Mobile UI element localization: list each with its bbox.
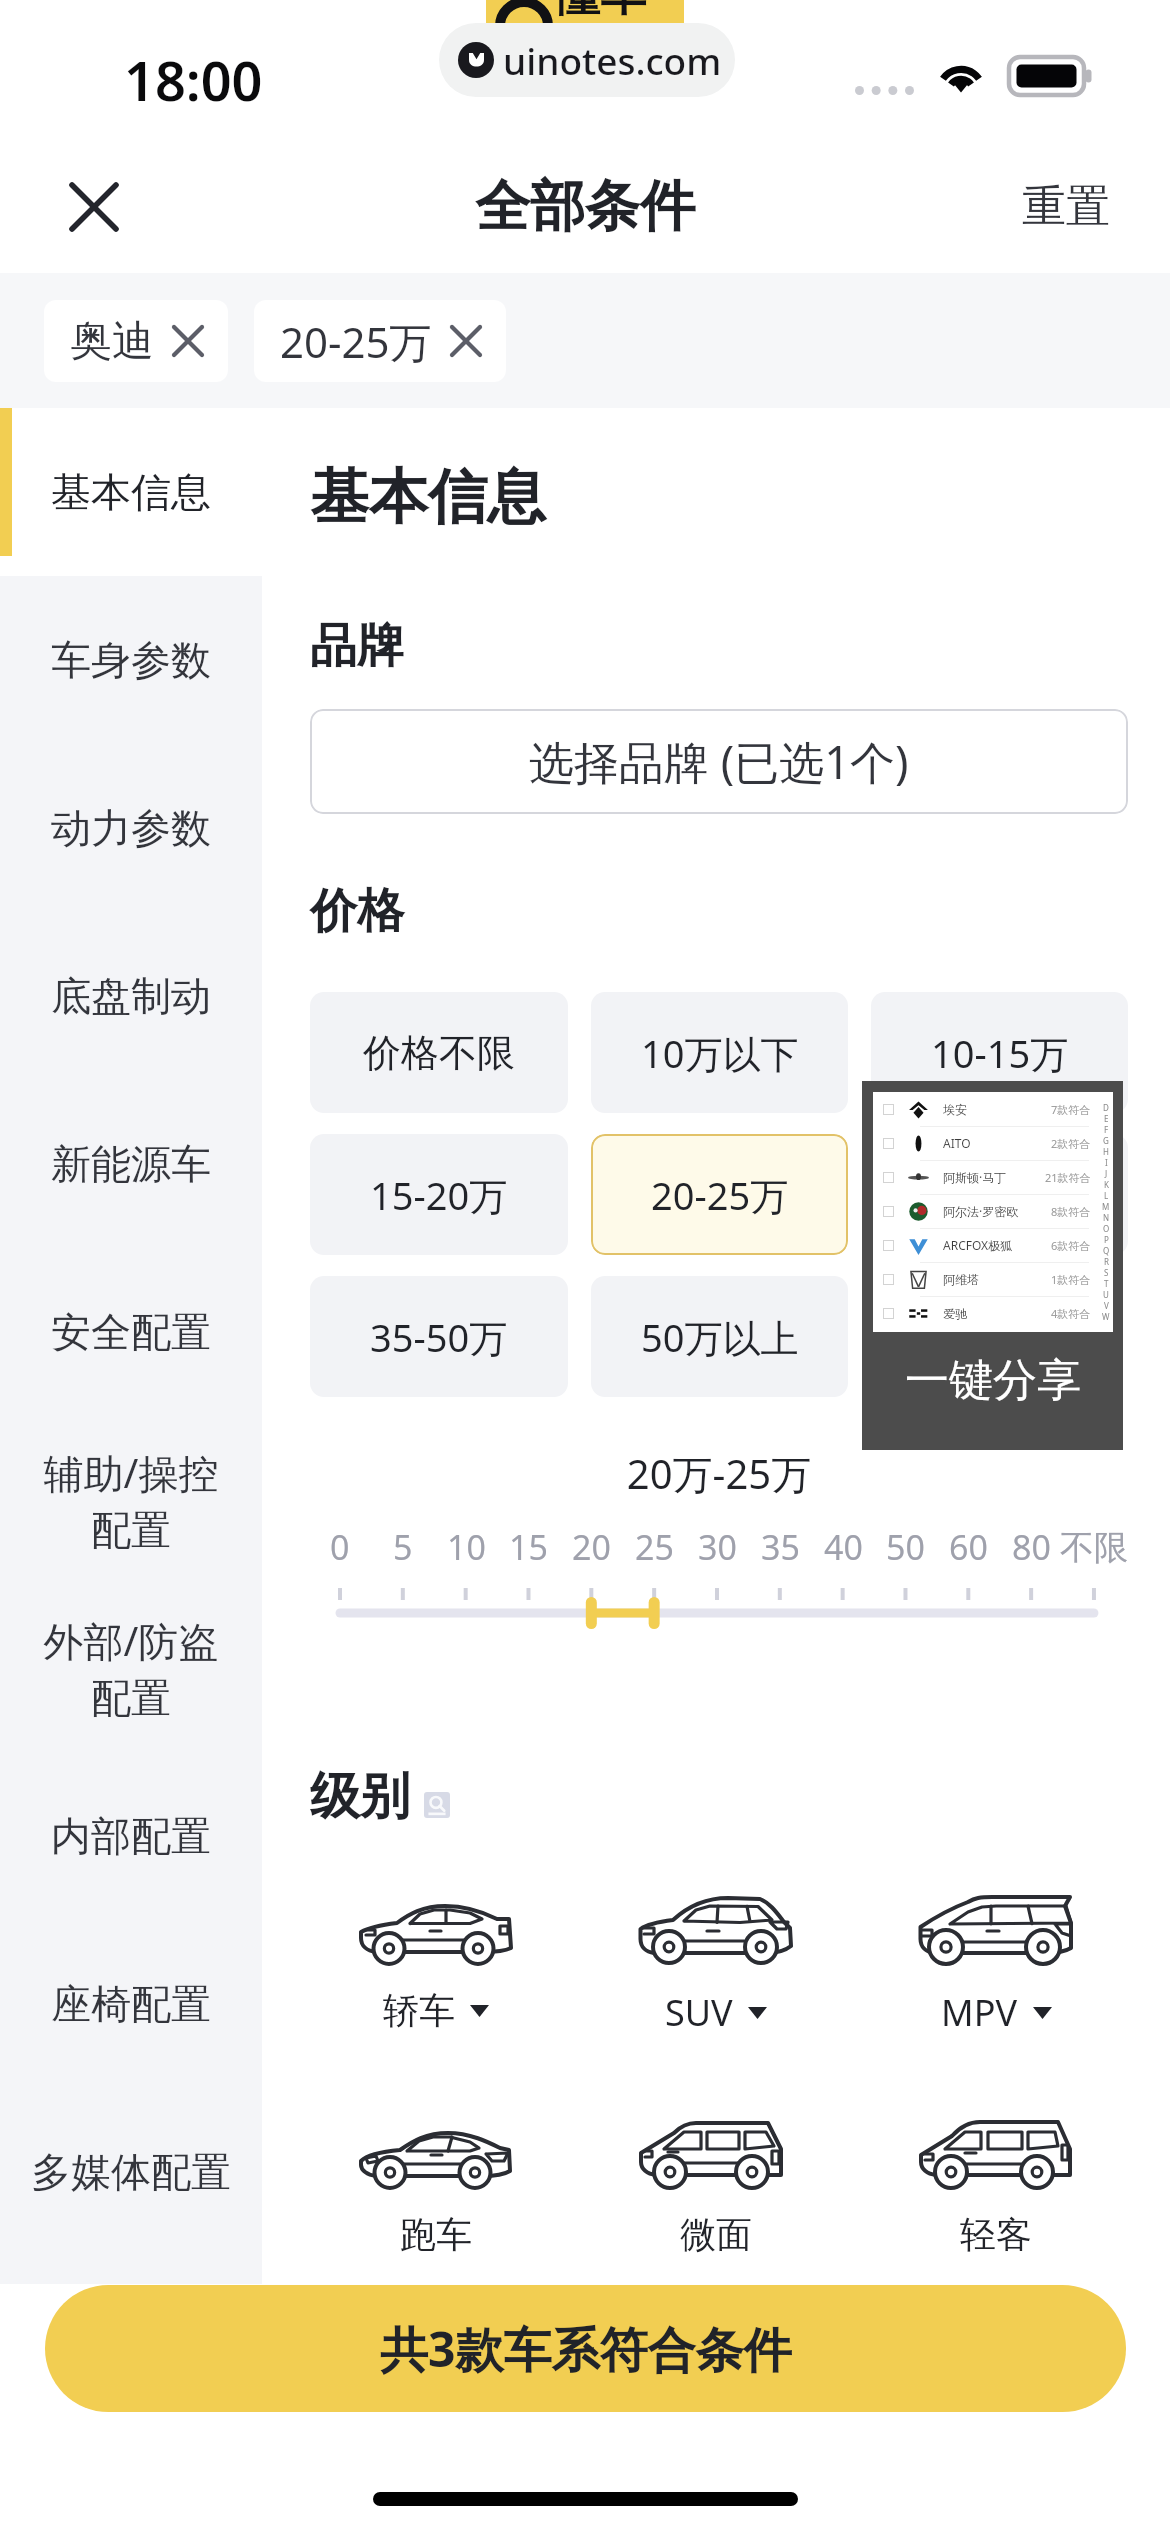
staticText: S [1104,1267,1109,1278]
staticText: T [1104,1278,1109,1289]
staticText: F [1104,1124,1109,1135]
staticText: 10 [447,1524,486,1570]
staticText: 多媒体配置 [0,2147,262,2197]
staticText: 爱驰 [943,1306,967,1321]
button[interactable]: 多媒体配置 [0,2088,262,2256]
staticText: 阿斯顿·马丁 [943,1169,1007,1185]
button[interactable]: 25-35万 [871,1134,1128,1255]
button[interactable]: 外部/防盗 配置 [0,1584,262,1752]
button[interactable]: 10万以下 [591,992,848,1113]
staticText: M [1102,1201,1110,1212]
staticText: 1款符合 [1051,1272,1091,1287]
button[interactable]: 20-25万 [591,1134,848,1255]
staticText: 新能源车 [0,1139,262,1189]
button[interactable]: 重置 [1012,161,1120,252]
staticText: 轻客 [960,2212,1032,2257]
button[interactable]: 微面 [576,2119,856,2257]
staticText: W [1102,1311,1110,1322]
button[interactable]: 50万以上 [591,1276,848,1397]
staticText: 8款符合 [1051,1204,1091,1219]
staticText: 微面 [680,2212,752,2257]
staticText: J [1105,1168,1108,1179]
staticText: 60 [949,1524,988,1570]
staticText: 0 [330,1524,350,1570]
staticText: N [1103,1212,1110,1223]
staticText: O [1103,1223,1110,1234]
button[interactable]: 轻客 [856,2119,1136,2257]
button[interactable]: 35-50万 [310,1276,568,1397]
button[interactable]: 座椅配置 [0,1920,262,2088]
staticText: 不限 [1060,1526,1128,1569]
button[interactable]: 基本信息 [0,408,262,576]
staticText: 底盘制动 [0,971,262,1021]
staticText: 25-35万 [931,1169,1069,1221]
button[interactable]: 轿车 [296,1895,576,2033]
staticText: 20-25万 [651,1169,789,1221]
staticText: 4款符合 [1051,1306,1091,1321]
staticText: 奥迪 [70,315,154,368]
staticText: 35-50万 [370,1311,508,1363]
button[interactable]: 价格不限 [310,992,568,1113]
button[interactable]: 15-20万 [310,1134,568,1255]
button[interactable]: 20-25万 [254,300,506,382]
button[interactable]: Close [48,161,140,253]
staticText: V [1104,1300,1109,1311]
staticText: H [1103,1146,1109,1157]
staticText: P [1104,1234,1109,1245]
staticText: 20万-25万 [310,1446,1128,1501]
staticText: 7款符合 [1051,1102,1091,1117]
staticText: 品牌 [310,617,404,676]
staticText: 15 [509,1524,548,1570]
staticText: 2款符合 [1051,1136,1091,1151]
staticText: 阿维塔 [943,1272,979,1287]
staticText: 10-15万 [931,1027,1069,1079]
button[interactable]: 辅助/操控 配置 [0,1416,262,1584]
staticText: R [1104,1256,1109,1267]
staticText: 35 [761,1524,800,1570]
staticText: 外部/防盗 配置 [0,1613,262,1724]
staticText: ARCFOX极狐 [943,1237,1013,1253]
button[interactable]: 选择品牌 (已选1个) [310,709,1128,814]
button[interactable]: MPV [856,1895,1136,2037]
staticText: 重置 [1022,179,1110,234]
button[interactable]: 跑车 [296,2119,576,2257]
button[interactable]: 内部配置 [0,1752,262,1920]
staticText: 车身参数 [0,635,262,685]
button[interactable]: 安全配置 [0,1248,262,1416]
staticText: SUV [665,1988,733,2037]
staticText: 共3款车系符合条件 [380,2316,792,2382]
button[interactable]: 共3款车系符合条件 [45,2285,1126,2412]
staticText: 40 [824,1524,863,1570]
staticText: 轿车 [383,1988,455,2033]
button[interactable]: 新能源车 [0,1080,262,1248]
staticText: 内部配置 [0,1811,262,1861]
staticText: I [1105,1157,1108,1168]
staticText: 21款符合 [1045,1170,1091,1185]
button[interactable]: 动力参数 [0,744,262,912]
staticText: 30 [698,1524,737,1570]
staticText: 安全配置 [0,1307,262,1357]
staticText: D [1103,1102,1109,1113]
staticText: 基本信息 [0,467,262,517]
staticText: Q [1103,1245,1110,1256]
button[interactable]: 底盘制动 [0,912,262,1080]
staticText: 全部条件 [475,172,695,241]
staticText: 辅助/操控 配置 [0,1445,262,1556]
staticText: 选择品牌 (已选1个) [529,731,909,792]
button[interactable]: 10-15万 [871,992,1128,1113]
button[interactable]: 埃安 [862,1081,1123,1450]
button[interactable]: 奥迪 [44,300,228,382]
staticText: 6款符合 [1051,1238,1091,1253]
button[interactable]: SUV [576,1895,856,2037]
staticText: 10万以下 [641,1027,799,1079]
staticText: 15-20万 [370,1169,508,1221]
staticText: G [1103,1135,1109,1146]
staticText: 80 [1012,1524,1051,1570]
staticText: U [1103,1289,1109,1300]
staticText: MPV [941,1988,1018,2037]
staticText: 50 [886,1524,925,1570]
staticText: 座椅配置 [0,1979,262,2029]
staticText: L [1104,1190,1109,1201]
button[interactable]: 车身参数 [0,576,262,744]
staticText: E [1104,1113,1109,1124]
